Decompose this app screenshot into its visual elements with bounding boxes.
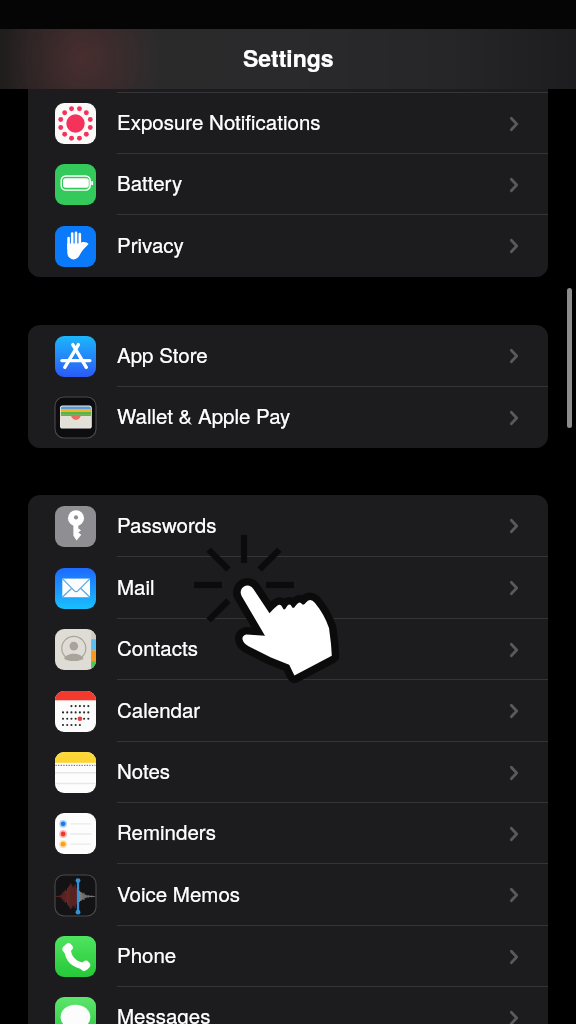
- staticText: Notes: [117, 755, 171, 784]
- staticText: Calendar: [117, 694, 201, 723]
- staticText: App Store: [117, 339, 208, 368]
- staticText: Reminders: [117, 816, 216, 845]
- staticText: Battery: [117, 167, 183, 196]
- button[interactable]: App Store: [28, 325, 548, 387]
- staticText: Messages: [117, 1000, 211, 1024]
- button[interactable]: Focus: [28, 31, 548, 93]
- button[interactable]: Phone: [28, 926, 548, 987]
- button[interactable]: Contacts: [28, 619, 548, 680]
- staticText: Phone: [117, 939, 177, 968]
- staticText: Exposure Notifications: [117, 106, 321, 135]
- staticText: Contacts: [117, 632, 198, 661]
- button[interactable]: Voice Memos: [28, 864, 548, 926]
- staticText: Settings: [243, 41, 334, 74]
- button[interactable]: Reminders: [28, 803, 548, 864]
- button[interactable]: Battery: [28, 154, 548, 215]
- staticText: Voice Memos: [117, 878, 241, 907]
- staticText: Privacy: [117, 229, 184, 258]
- button[interactable]: Wallet & Apple Pay: [28, 387, 548, 448]
- staticText: Focus: [117, 45, 173, 74]
- button[interactable]: Messages: [28, 987, 548, 1024]
- button[interactable]: Privacy: [28, 215, 548, 277]
- staticText: Mail: [117, 571, 155, 600]
- staticText: Wallet & Apple Pay: [117, 400, 291, 429]
- button[interactable]: Notes: [28, 742, 548, 803]
- button[interactable]: Exposure Notifications: [28, 93, 548, 154]
- staticText: Passwords: [117, 509, 217, 538]
- button[interactable]: Calendar: [28, 680, 548, 742]
- button[interactable]: Passwords: [28, 495, 548, 557]
- button[interactable]: Mail: [28, 557, 548, 619]
